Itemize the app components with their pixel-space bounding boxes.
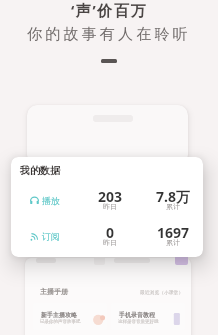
- staticText: ‘声’价百万: [71, 0, 148, 20]
- staticText: 订阅: [42, 231, 60, 242]
- staticText: 主播手册: [40, 287, 68, 296]
- staticText: 累计: [151, 202, 195, 211]
- staticText: 7.8万: [151, 187, 195, 206]
- staticText: 昨日: [88, 202, 132, 211]
- staticText: 最近浏览（小课堂）: [140, 289, 184, 295]
- staticText: 你的故事有人在聆听: [27, 25, 191, 44]
- staticText: 1697: [151, 223, 195, 242]
- staticText: 播放: [42, 195, 60, 206]
- staticText: 这样录音音质更好哦: [118, 319, 159, 325]
- staticText: 手机录音教程: [119, 311, 155, 319]
- staticText: 累计: [151, 238, 195, 247]
- staticText: 203: [88, 187, 132, 206]
- button[interactable]: 手机录音教程: [111, 303, 185, 330]
- staticText: 0: [88, 223, 132, 242]
- staticText: 新手主播攻略: [41, 311, 77, 319]
- staticText: 我的数据: [20, 164, 60, 177]
- staticText: 昨日: [88, 238, 132, 247]
- button[interactable]: 新手主播攻略: [33, 303, 107, 330]
- staticText: 记录你的声音故事吧: [40, 319, 81, 325]
